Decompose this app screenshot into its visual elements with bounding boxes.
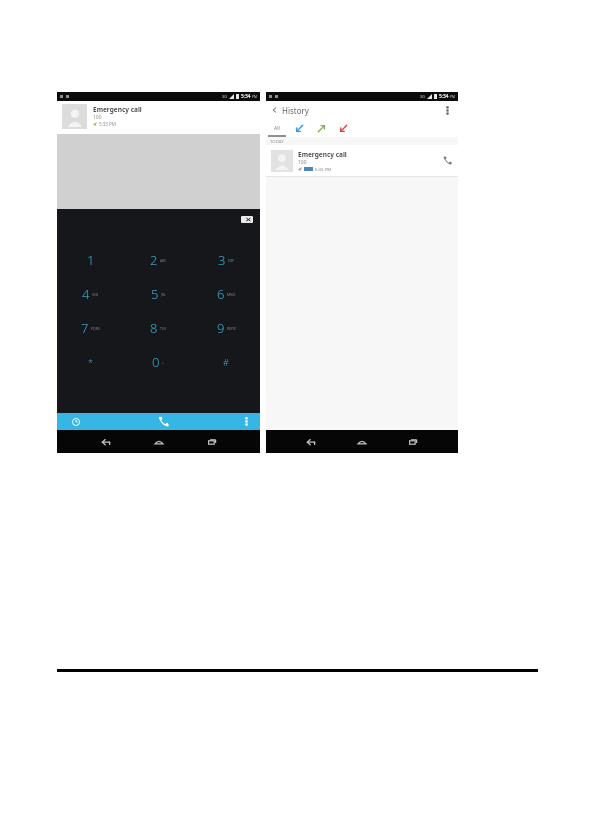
staticText: 3 bbox=[218, 251, 226, 269]
staticText: 5:33 PM bbox=[315, 166, 332, 172]
button[interactable]: 9 bbox=[192, 311, 260, 345]
staticText: JKL bbox=[161, 292, 166, 297]
button[interactable]: Outgoing calls bbox=[310, 119, 332, 137]
button[interactable]: Recent apps bbox=[201, 430, 223, 453]
staticText: 5:34 bbox=[439, 93, 449, 100]
button[interactable]: Emergency call bbox=[57, 101, 260, 134]
button[interactable]: More options bbox=[441, 101, 453, 119]
button[interactable]: Back bbox=[271, 106, 279, 114]
button[interactable]: 7 bbox=[57, 311, 124, 345]
staticText: DEF bbox=[228, 258, 235, 263]
staticText: 5:33 PM bbox=[99, 121, 116, 127]
staticText: 5 bbox=[151, 285, 159, 303]
staticText: PM bbox=[252, 95, 257, 99]
staticText: TUV bbox=[160, 326, 167, 331]
button[interactable]: More options bbox=[232, 413, 260, 430]
button[interactable]: Call bbox=[95, 413, 232, 430]
button[interactable]: Call history bbox=[57, 413, 95, 430]
button[interactable]: 3 bbox=[192, 243, 260, 277]
staticText: 1 bbox=[87, 251, 95, 269]
button[interactable]: # bbox=[192, 345, 260, 379]
staticText: + bbox=[162, 360, 164, 365]
button[interactable]: * bbox=[57, 345, 124, 379]
staticText: History bbox=[282, 105, 309, 116]
staticText: ABC bbox=[160, 258, 167, 263]
button[interactable]: Emergency call bbox=[266, 145, 458, 176]
staticText: PQRS bbox=[91, 326, 100, 331]
staticText: 9 bbox=[217, 319, 225, 337]
staticText: # bbox=[223, 356, 229, 368]
button[interactable]: Incoming calls bbox=[288, 119, 310, 137]
staticText: * bbox=[88, 356, 93, 368]
button[interactable]: 6 bbox=[192, 277, 260, 311]
button[interactable]: 4 bbox=[57, 277, 124, 311]
button[interactable]: Back bbox=[95, 430, 117, 453]
staticText: Emergency call bbox=[93, 105, 142, 114]
staticText: WXYZ bbox=[227, 326, 236, 331]
staticText: 0 bbox=[152, 353, 160, 371]
button[interactable]: Back bbox=[300, 430, 322, 453]
staticText: 100 bbox=[298, 159, 307, 166]
staticText: 5:34 bbox=[241, 93, 251, 100]
staticText: 8 bbox=[150, 319, 158, 337]
button[interactable]: 5 bbox=[124, 277, 192, 311]
staticText: MNO bbox=[227, 292, 236, 297]
button[interactable]: Missed calls bbox=[332, 119, 354, 137]
staticText: 2 bbox=[150, 251, 158, 269]
button[interactable]: Backspace bbox=[241, 216, 253, 223]
button[interactable]: Recent apps bbox=[402, 430, 424, 453]
button[interactable]: All bbox=[266, 119, 288, 137]
staticText: 3G bbox=[222, 94, 227, 99]
staticText: All bbox=[274, 125, 280, 132]
button[interactable]: 8 bbox=[124, 311, 192, 345]
button[interactable]: 0 bbox=[124, 345, 192, 379]
staticText: 3G bbox=[420, 94, 425, 99]
button[interactable]: Home bbox=[148, 430, 170, 453]
staticText: 7 bbox=[81, 319, 89, 337]
button[interactable]: 1 bbox=[57, 243, 124, 277]
button[interactable]: Home bbox=[351, 430, 373, 453]
staticText: TODAY bbox=[270, 138, 284, 144]
staticText: PM bbox=[450, 95, 455, 99]
staticText: 6 bbox=[217, 285, 225, 303]
staticText: GHI bbox=[92, 292, 99, 297]
staticText: 100 bbox=[93, 114, 102, 121]
button[interactable]: Call back bbox=[436, 145, 458, 176]
button[interactable]: 2 bbox=[124, 243, 192, 277]
staticText: 4 bbox=[82, 285, 90, 303]
staticText: Emergency call bbox=[298, 150, 347, 159]
